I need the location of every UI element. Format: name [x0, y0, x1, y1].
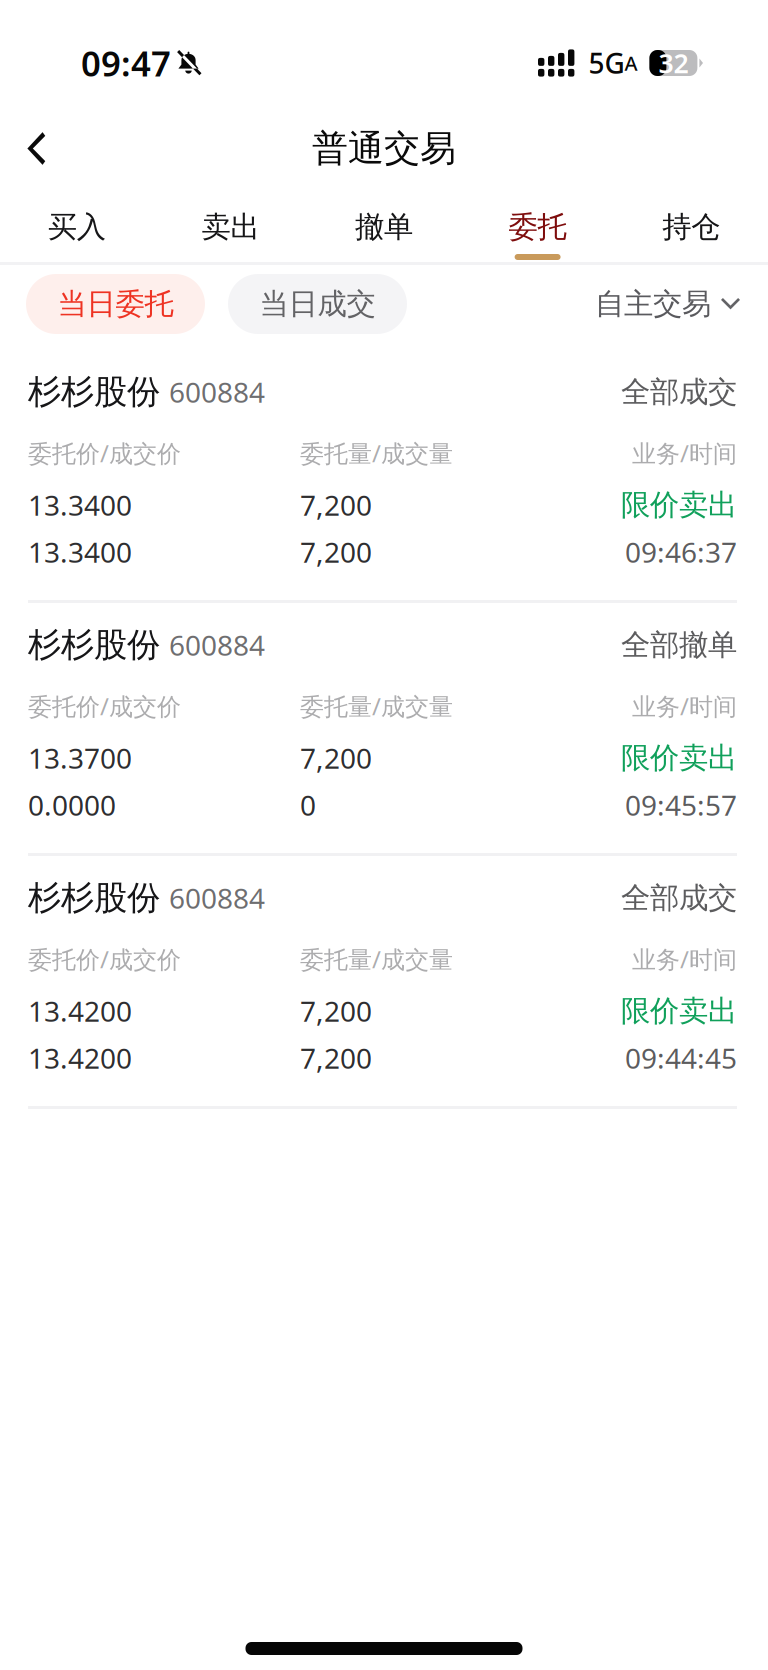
staticText: 09:46:37	[625, 533, 737, 571]
staticText: 09:47	[81, 40, 171, 86]
staticText: 0	[300, 786, 316, 824]
staticText: 13.4200	[28, 1039, 132, 1077]
staticText: 委托	[509, 209, 567, 245]
staticText: 13.3400	[28, 486, 132, 524]
button[interactable]: 杉杉股份	[0, 603, 768, 853]
button[interactable]: 委托	[461, 185, 614, 262]
staticText: 委托量/成交量	[300, 943, 453, 975]
staticText: 32	[658, 45, 688, 81]
staticText: 全部成交	[621, 880, 737, 916]
staticText: 持仓	[662, 209, 720, 245]
staticText: 业务/时间	[632, 943, 737, 975]
button[interactable]: 买入	[0, 185, 154, 262]
staticText: 600884	[169, 626, 265, 664]
staticText: 600884	[169, 373, 265, 411]
staticText: 委托价/成交价	[28, 690, 181, 722]
button[interactable]: 撤单	[307, 185, 461, 262]
staticText: 委托价/成交价	[28, 437, 181, 469]
staticText: 卖出	[201, 209, 259, 245]
staticText: 09:45:57	[625, 786, 737, 824]
staticText: 当日成交	[259, 286, 375, 322]
staticText: 当日委托	[57, 286, 173, 322]
staticText: 委托量/成交量	[300, 690, 453, 722]
staticText: 7,200	[300, 992, 372, 1030]
staticText: 杉杉股份	[28, 371, 160, 412]
staticText: A	[624, 50, 637, 76]
staticText: 13.3400	[28, 533, 132, 571]
staticText: 7,200	[300, 739, 372, 777]
staticText: 委托量/成交量	[300, 437, 453, 469]
button[interactable]: 自主交易	[595, 274, 740, 334]
staticText: 全部撤单	[621, 627, 737, 663]
staticText: 限价卖出	[621, 993, 737, 1029]
staticText: 自主交易	[595, 286, 711, 322]
staticText: 600884	[169, 879, 265, 917]
staticText: 业务/时间	[632, 690, 737, 722]
button[interactable]: 当日成交	[228, 274, 407, 334]
staticText: 杉杉股份	[28, 624, 160, 665]
staticText: 限价卖出	[621, 740, 737, 776]
button[interactable]: Back	[8, 117, 66, 179]
staticText: 13.4200	[28, 992, 132, 1030]
staticText: 全部成交	[621, 374, 737, 410]
staticText: 杉杉股份	[28, 877, 160, 918]
staticText: 13.3700	[28, 739, 132, 777]
button[interactable]: 持仓	[614, 185, 768, 262]
staticText: 7,200	[300, 486, 372, 524]
button[interactable]: 杉杉股份	[0, 350, 768, 600]
button[interactable]: 当日委托	[26, 274, 205, 334]
staticText: 买入	[48, 209, 106, 245]
button[interactable]: 杉杉股份	[0, 856, 768, 1106]
staticText: 业务/时间	[632, 437, 737, 469]
staticText: 撤单	[355, 209, 413, 245]
staticText: 7,200	[300, 1039, 372, 1077]
staticText: 普通交易	[312, 126, 456, 171]
staticText: 限价卖出	[621, 487, 737, 523]
button[interactable]: 卖出	[154, 185, 307, 262]
staticText: 7,200	[300, 533, 372, 571]
staticText: 委托价/成交价	[28, 943, 181, 975]
staticText: 0.0000	[28, 786, 116, 824]
staticText: 09:44:45	[625, 1039, 737, 1077]
staticText: 5G	[588, 44, 624, 82]
